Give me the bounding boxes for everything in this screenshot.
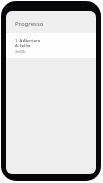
staticText: Ai Folha: [15, 43, 31, 48]
staticText: Progresso: [15, 20, 44, 28]
staticText: 1. A Abertura: [15, 38, 41, 43]
button[interactable]: 1. A Abertura: [6, 33, 96, 58]
staticText: 3m58s: [15, 49, 26, 54]
